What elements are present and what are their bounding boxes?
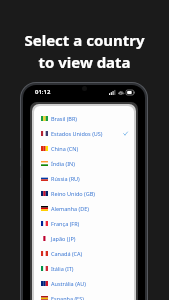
- button[interactable]: Canadá (CA): [34, 246, 134, 261]
- staticText: China (CN): [51, 145, 128, 152]
- button[interactable]: Índia (IN): [34, 156, 134, 171]
- button[interactable]: Espanha (ES): [34, 291, 134, 300]
- staticText: Brasil (BR): [51, 115, 128, 122]
- staticText: Alemanha (DE): [51, 205, 128, 212]
- button[interactable]: Itália (IT): [34, 261, 134, 276]
- button[interactable]: Reino Unido (GB): [34, 186, 134, 201]
- button[interactable]: Austrália (AU): [34, 276, 134, 291]
- staticText: Rússia (RU): [51, 175, 128, 182]
- button[interactable]: Alemanha (DE): [34, 201, 134, 216]
- staticText: França (FR): [51, 220, 128, 227]
- button[interactable]: Japão (JP): [34, 231, 134, 246]
- button[interactable]: França (FR): [34, 216, 134, 231]
- staticText: Japão (JP): [51, 235, 128, 242]
- staticText: 01:12: [35, 88, 51, 96]
- button[interactable]: Estados Unidos (US): [34, 126, 134, 141]
- button[interactable]: Rússia (RU): [34, 171, 134, 186]
- staticText: Reino Unido (GB): [51, 190, 128, 197]
- staticText: Itália (IT): [51, 265, 128, 272]
- staticText: Canadá (CA): [51, 250, 128, 257]
- button[interactable]: China (CN): [34, 141, 134, 156]
- staticText: to view data: [38, 52, 131, 72]
- staticText: Austrália (AU): [51, 280, 128, 287]
- staticText: Estados Unidos (US): [51, 130, 123, 137]
- staticText: Índia (IN): [51, 160, 128, 167]
- staticText: Select a country: [24, 30, 145, 50]
- staticText: Espanha (ES): [51, 295, 128, 300]
- button[interactable]: Brasil (BR): [34, 111, 134, 126]
